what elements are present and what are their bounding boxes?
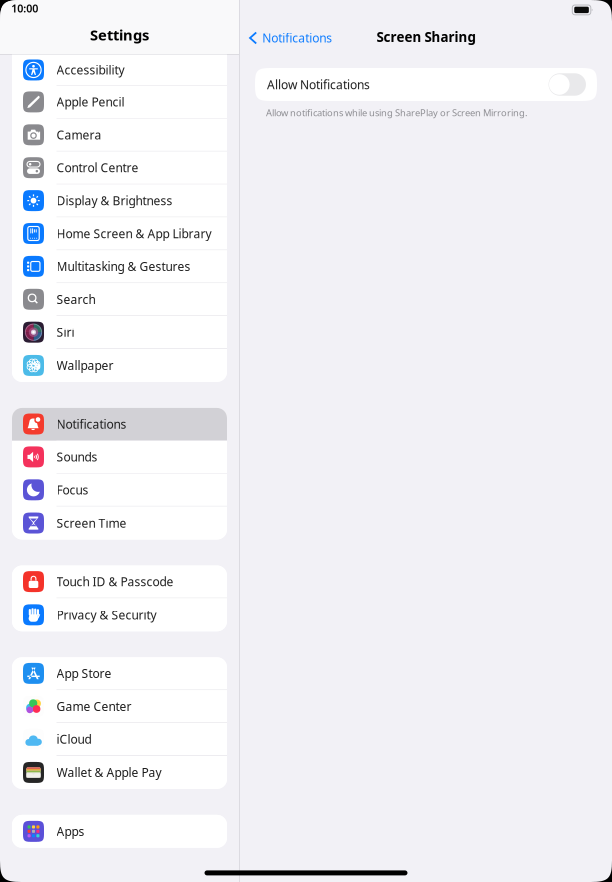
staticText: Allow notifications while using SharePla… bbox=[266, 106, 528, 119]
button[interactable]: iCloud bbox=[12, 723, 227, 756]
staticText: Control Centre bbox=[56, 160, 138, 176]
staticText: Sounds bbox=[56, 449, 97, 465]
staticText: Wallet & Apple Pay bbox=[56, 764, 161, 780]
staticText: Apple Pencil bbox=[56, 94, 124, 110]
button[interactable]: Accessibility bbox=[12, 55, 227, 86]
staticText: Game Center bbox=[56, 698, 131, 714]
staticText: Privacy & Security bbox=[56, 607, 156, 623]
staticText: Camera bbox=[56, 127, 101, 143]
staticText: Notifications bbox=[56, 416, 126, 432]
button[interactable]: Wallet & Apple Pay bbox=[12, 756, 227, 789]
button[interactable]: Home Screen & App Library bbox=[12, 217, 227, 250]
staticText: iCloud bbox=[56, 731, 91, 747]
button[interactable]: Control Centre bbox=[12, 152, 227, 184]
button[interactable]: Sounds bbox=[12, 441, 227, 474]
button[interactable]: Allow Notifications bbox=[548, 73, 586, 96]
button[interactable]: App Store bbox=[12, 657, 227, 690]
staticText: Focus bbox=[56, 482, 88, 498]
button[interactable]: Display & Brightness bbox=[12, 184, 227, 217]
button[interactable]: Search bbox=[12, 283, 227, 316]
staticText: Search bbox=[56, 291, 95, 307]
staticText: Screen Time bbox=[56, 515, 126, 531]
button[interactable]: Apple Pencil bbox=[12, 86, 227, 119]
button[interactable]: Siri bbox=[12, 316, 227, 349]
staticText: Touch ID & Passcode bbox=[56, 574, 173, 589]
button[interactable]: Apps bbox=[12, 815, 227, 848]
staticText: 10:00 bbox=[11, 1, 38, 15]
button[interactable]: Privacy & Security bbox=[12, 598, 227, 631]
button[interactable]: Touch ID & Passcode bbox=[12, 565, 227, 598]
staticText: Screen Sharing bbox=[376, 28, 475, 46]
button[interactable]: Screen Time bbox=[12, 507, 227, 539]
staticText: Wallpaper bbox=[56, 357, 113, 373]
button[interactable]: Multitasking & Gestures bbox=[12, 250, 227, 283]
staticText: App Store bbox=[56, 665, 111, 681]
staticText: Siri bbox=[56, 324, 74, 340]
button[interactable]: Game Center bbox=[12, 690, 227, 723]
button[interactable]: Camera bbox=[12, 119, 227, 152]
staticText: Home Screen & App Library bbox=[56, 225, 211, 241]
staticText: Accessibility bbox=[56, 62, 124, 78]
staticText: Display & Brightness bbox=[56, 193, 172, 208]
staticText: Apps bbox=[56, 823, 84, 839]
button[interactable]: Focus bbox=[12, 474, 227, 507]
button[interactable]: Wallpaper bbox=[12, 349, 227, 382]
staticText: Settings bbox=[90, 25, 149, 44]
button[interactable]: Notifications bbox=[240, 23, 342, 53]
staticText: Notifications bbox=[262, 30, 332, 46]
staticText: Multitasking & Gestures bbox=[56, 258, 190, 274]
staticText: Allow Notifications bbox=[267, 76, 370, 92]
button[interactable]: Notifications bbox=[12, 408, 227, 441]
